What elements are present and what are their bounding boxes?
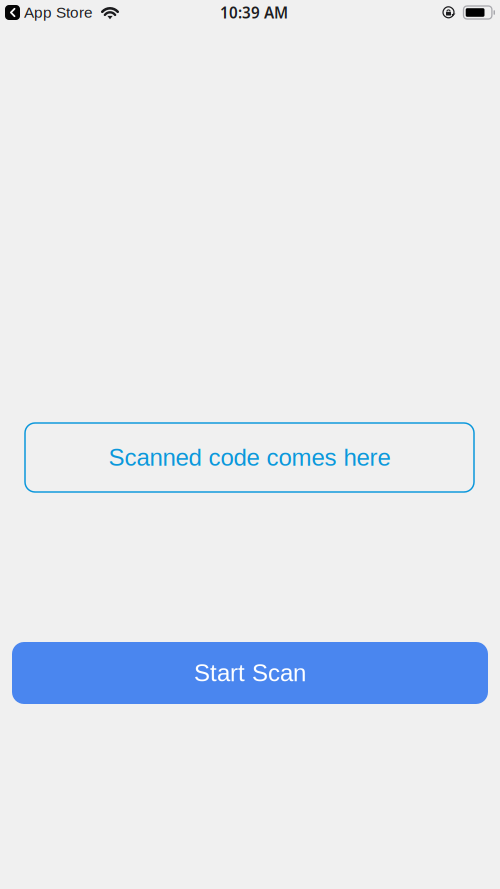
staticText: 10:39 AM <box>220 2 288 23</box>
staticText: Start Scan <box>194 660 306 686</box>
staticText: Scanned code comes here <box>108 444 390 471</box>
button[interactable]: App Store <box>5 4 93 21</box>
button[interactable]: Start Scan <box>0 642 500 704</box>
staticText: App Store <box>24 4 93 21</box>
